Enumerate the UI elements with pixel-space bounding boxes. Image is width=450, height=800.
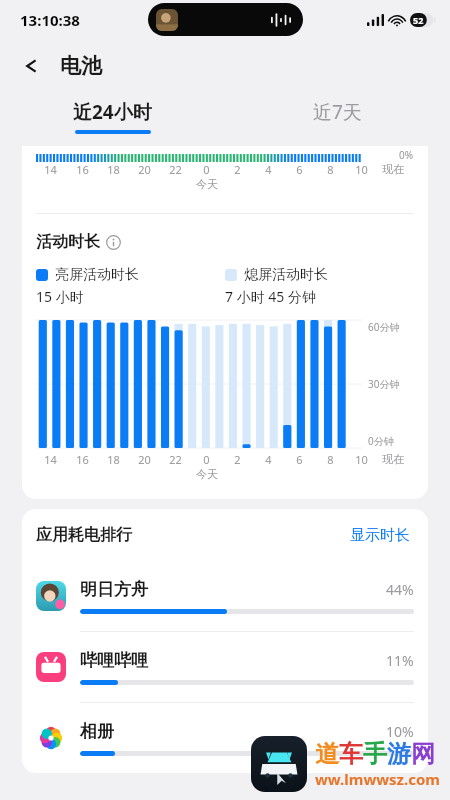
staticText: 18 xyxy=(107,452,120,467)
staticText: 7 小时 45 分钟 xyxy=(225,287,316,306)
staticText: ww.lmwwsz.com xyxy=(315,769,440,789)
staticText: 20 xyxy=(138,162,151,177)
staticText: 10 xyxy=(355,452,368,467)
staticText: 手 xyxy=(363,739,387,769)
staticText: 0 xyxy=(203,452,210,467)
staticText: 6 xyxy=(296,452,303,467)
staticText: 15 小时 xyxy=(36,287,84,306)
staticText: 20 xyxy=(138,452,151,467)
staticText: 14 xyxy=(44,162,57,177)
button[interactable]: 明日方舟 xyxy=(22,561,428,631)
staticText: 8 xyxy=(327,162,334,177)
staticText: 14 xyxy=(44,452,57,467)
staticText: 22 xyxy=(169,162,182,177)
button[interactable]: 哔哩哔哩 xyxy=(22,632,428,702)
staticText: 8 xyxy=(327,452,334,467)
staticText: 明日方舟 xyxy=(80,579,148,600)
staticText: 44% xyxy=(386,580,414,599)
staticText: 10 xyxy=(355,162,368,177)
staticText: 应用耗电排行 xyxy=(36,525,132,545)
staticText: 11% xyxy=(386,651,414,670)
staticText: 近7天 xyxy=(313,99,362,125)
staticText: 10% xyxy=(386,722,414,741)
staticText: 0分钟 xyxy=(368,434,394,448)
staticText: 亮屏活动时长 xyxy=(55,266,139,284)
staticText: 4 xyxy=(265,452,272,467)
staticText: 今天 xyxy=(196,467,218,481)
staticText: 相册 xyxy=(80,721,114,742)
staticText: 16 xyxy=(76,162,89,177)
staticText: 18 xyxy=(107,162,120,177)
staticText: 电池 xyxy=(60,53,102,79)
staticText: 6 xyxy=(296,162,303,177)
button[interactable]: 近24小时 xyxy=(0,92,225,140)
staticText: 熄屏活动时长 xyxy=(244,266,328,284)
staticText: 4 xyxy=(265,162,272,177)
staticText: 显示时长 xyxy=(350,526,410,545)
button[interactable]: 显示时长 xyxy=(346,522,414,549)
staticText: 现在 xyxy=(382,452,404,466)
staticText: 游 xyxy=(387,739,411,769)
staticText: 0 xyxy=(203,162,210,177)
button[interactable]: Info xyxy=(106,235,121,250)
button[interactable]: Back xyxy=(14,46,54,86)
staticText: 网 xyxy=(411,739,435,769)
button[interactable]: 相册 xyxy=(22,703,428,773)
staticText: 今天 xyxy=(196,177,218,191)
staticText: 2 xyxy=(234,162,241,177)
staticText: 现在 xyxy=(382,162,404,176)
staticText: 活动时长 xyxy=(36,232,100,252)
staticText: 30分钟 xyxy=(368,377,400,391)
staticText: 60分钟 xyxy=(368,320,400,334)
staticText: 近24小时 xyxy=(73,99,152,125)
staticText: 0% xyxy=(399,148,414,162)
staticText: 车 xyxy=(339,739,363,769)
staticText: 2 xyxy=(234,452,241,467)
button[interactable]: 近7天 xyxy=(225,92,450,140)
staticText: 哔哩哔哩 xyxy=(80,650,148,671)
staticText: 52 xyxy=(413,14,424,26)
staticText: 道 xyxy=(315,739,339,769)
staticText: 13:10:38 xyxy=(20,10,80,30)
staticText: 22 xyxy=(169,452,182,467)
staticText: 16 xyxy=(76,452,89,467)
